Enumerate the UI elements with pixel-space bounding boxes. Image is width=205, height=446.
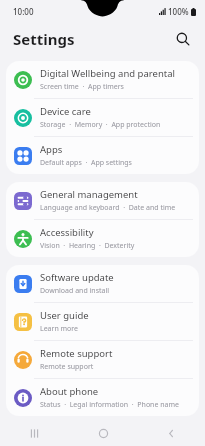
staticText: Download and install	[40, 286, 110, 296]
staticText: User guide	[40, 309, 89, 322]
button[interactable]: Search	[171, 27, 195, 51]
staticText: Language and keyboard · Date and time	[40, 203, 176, 213]
button[interactable]: Home	[69, 420, 137, 446]
staticText: Apps	[40, 143, 63, 156]
staticText: Digital Wellbeing and parental controls	[40, 67, 191, 80]
button[interactable]: Recents	[0, 420, 69, 446]
staticText: Software update	[40, 271, 114, 284]
button[interactable]: User guide	[6, 303, 199, 340]
staticText: 10:00	[13, 6, 34, 17]
staticText: About phone	[40, 385, 99, 398]
staticText: Device care	[40, 105, 91, 118]
button[interactable]: Digital Wellbeing and parental controls	[6, 61, 199, 98]
staticText: Remote support	[40, 362, 94, 372]
staticText: General management	[40, 188, 138, 201]
staticText: 100%	[168, 6, 189, 17]
button[interactable]: Software update	[6, 265, 199, 302]
button[interactable]: Back	[137, 420, 205, 446]
staticText: Accessibility	[40, 226, 94, 239]
staticText: Remote support	[40, 347, 113, 360]
button[interactable]: Remote support	[6, 341, 199, 378]
button[interactable]: Accessibility	[6, 220, 199, 257]
button[interactable]: About phone	[6, 379, 199, 416]
staticText: Storage · Memory · App protection	[40, 120, 161, 130]
staticText: Learn more	[40, 324, 79, 334]
staticText: Screen time · App timers	[40, 82, 124, 92]
staticText: Default apps · App settings	[40, 158, 132, 168]
staticText: Status · Legal information · Phone name	[40, 400, 179, 410]
button[interactable]: Apps	[6, 137, 199, 174]
staticText: Vision · Hearing · Dexterity	[40, 241, 135, 251]
staticText: Settings	[13, 29, 75, 49]
button[interactable]: Device care	[6, 99, 199, 136]
button[interactable]: General management	[6, 182, 199, 219]
